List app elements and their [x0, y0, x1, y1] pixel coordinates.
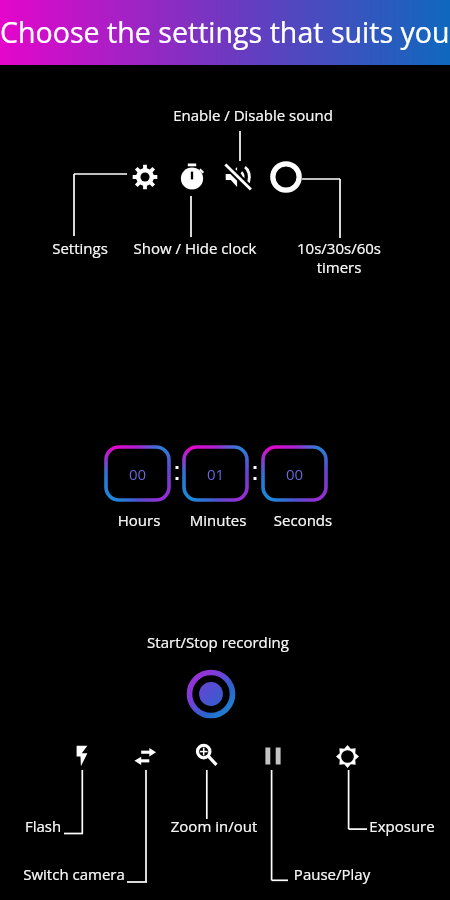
button[interactable]: Zoom in or out	[196, 744, 218, 766]
staticText: 01	[207, 464, 225, 484]
button[interactable]: Switch camera	[133, 745, 157, 769]
staticText: 10s/30s/60s	[209, 238, 450, 258]
staticText: Exposure	[272, 816, 450, 836]
staticText: Enable / Disable sound	[123, 105, 383, 125]
button[interactable]: Settings	[0, 238, 210, 258]
button[interactable]: Zoom in/out	[84, 816, 344, 836]
button[interactable]: Pause or play	[263, 746, 283, 766]
button[interactable]: Settings	[132, 164, 158, 190]
button[interactable]: 00	[261, 445, 328, 502]
button[interactable]: Switch camera	[0, 864, 204, 884]
staticText: Hours	[9, 510, 269, 530]
button[interactable]: Enable or disable sound	[223, 162, 253, 192]
staticText: 00	[286, 464, 304, 484]
button[interactable]: Pause/Play	[202, 864, 450, 884]
staticText: Show / Hide clock	[65, 238, 325, 258]
staticText: Start/Stop recording	[88, 632, 348, 652]
button[interactable]: 00	[104, 445, 171, 502]
button[interactable]: Flash	[0, 816, 173, 836]
staticText: Minutes	[88, 510, 348, 530]
button[interactable]: Flash	[71, 745, 93, 767]
button[interactable]: Exposure	[272, 816, 450, 836]
button[interactable]: Choose the settings that suits you	[0, 0, 450, 65]
staticText: Zoom in/out	[84, 816, 344, 836]
staticText: Settings	[0, 238, 210, 258]
staticText: timers	[209, 257, 450, 277]
button[interactable]: Show or hide clock	[176, 162, 208, 194]
staticText: Pause/Play	[202, 864, 450, 884]
button[interactable]: 01	[182, 445, 249, 502]
button[interactable]: Timer presets	[269, 160, 303, 194]
staticText: Choose the settings that suits you	[0, 12, 450, 51]
staticText: 00	[129, 464, 147, 484]
button[interactable]: Show / Hide clock	[65, 238, 325, 258]
button[interactable]: Start or stop recording	[185, 668, 237, 720]
button[interactable]: timers	[209, 257, 450, 277]
staticText: Seconds	[173, 510, 433, 530]
button[interactable]: 10s/30s/60s	[209, 238, 450, 258]
staticText: Switch camera	[0, 864, 204, 884]
staticText: Flash	[0, 816, 173, 836]
button[interactable]: Exposure	[336, 745, 359, 768]
